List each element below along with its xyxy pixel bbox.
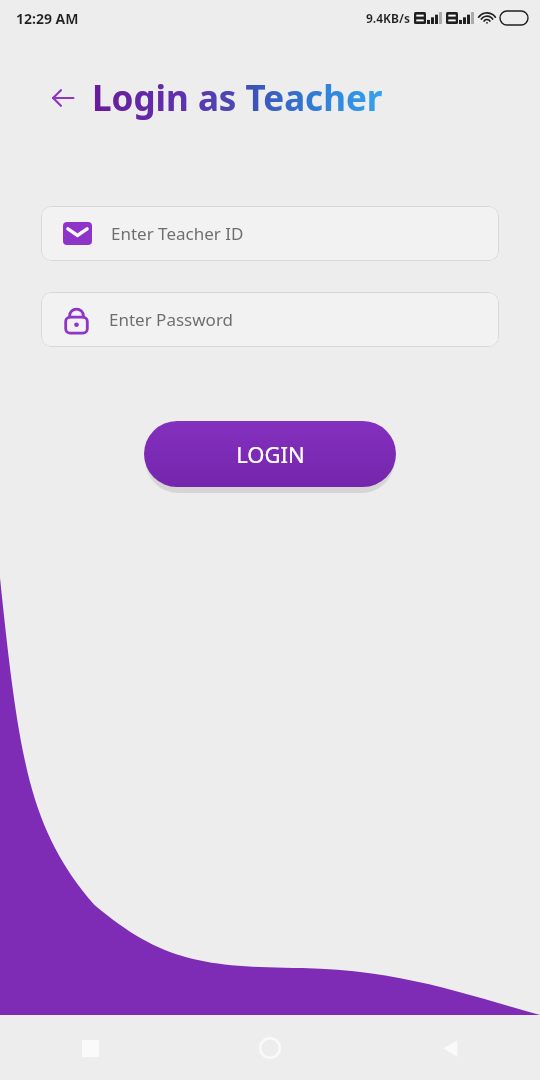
button[interactable]: LOGIN <box>144 421 396 487</box>
button[interactable]: Home <box>248 1026 292 1070</box>
button[interactable]: Enter Teacher ID <box>41 206 499 261</box>
staticText: Enter Password <box>109 308 234 331</box>
button[interactable]: Recent apps <box>68 1026 112 1070</box>
staticText: LOGIN <box>236 439 305 469</box>
staticText: Enter Teacher ID <box>111 222 244 245</box>
button[interactable]: Back <box>40 75 86 121</box>
staticText: 9.4KB/s <box>366 10 411 26</box>
button[interactable]: Enter Password <box>41 292 499 347</box>
staticText: 12:29 AM <box>16 9 79 28</box>
staticText: Login as Teacher <box>92 74 383 122</box>
